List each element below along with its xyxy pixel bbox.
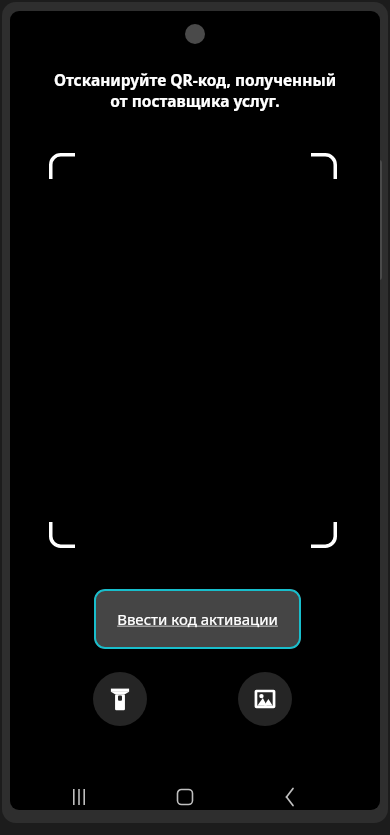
staticText: Отсканируйте QR-код, полученный от поста… (40, 69, 350, 112)
button[interactable]: Flashlight (93, 672, 147, 726)
button[interactable]: Back (238, 776, 344, 810)
button[interactable]: Ввести код активации (94, 589, 301, 649)
staticText: Ввести код активации (117, 609, 278, 629)
button[interactable]: Home (132, 776, 238, 810)
button[interactable]: Recent apps (26, 776, 132, 810)
button[interactable]: Choose image from gallery (238, 672, 292, 726)
